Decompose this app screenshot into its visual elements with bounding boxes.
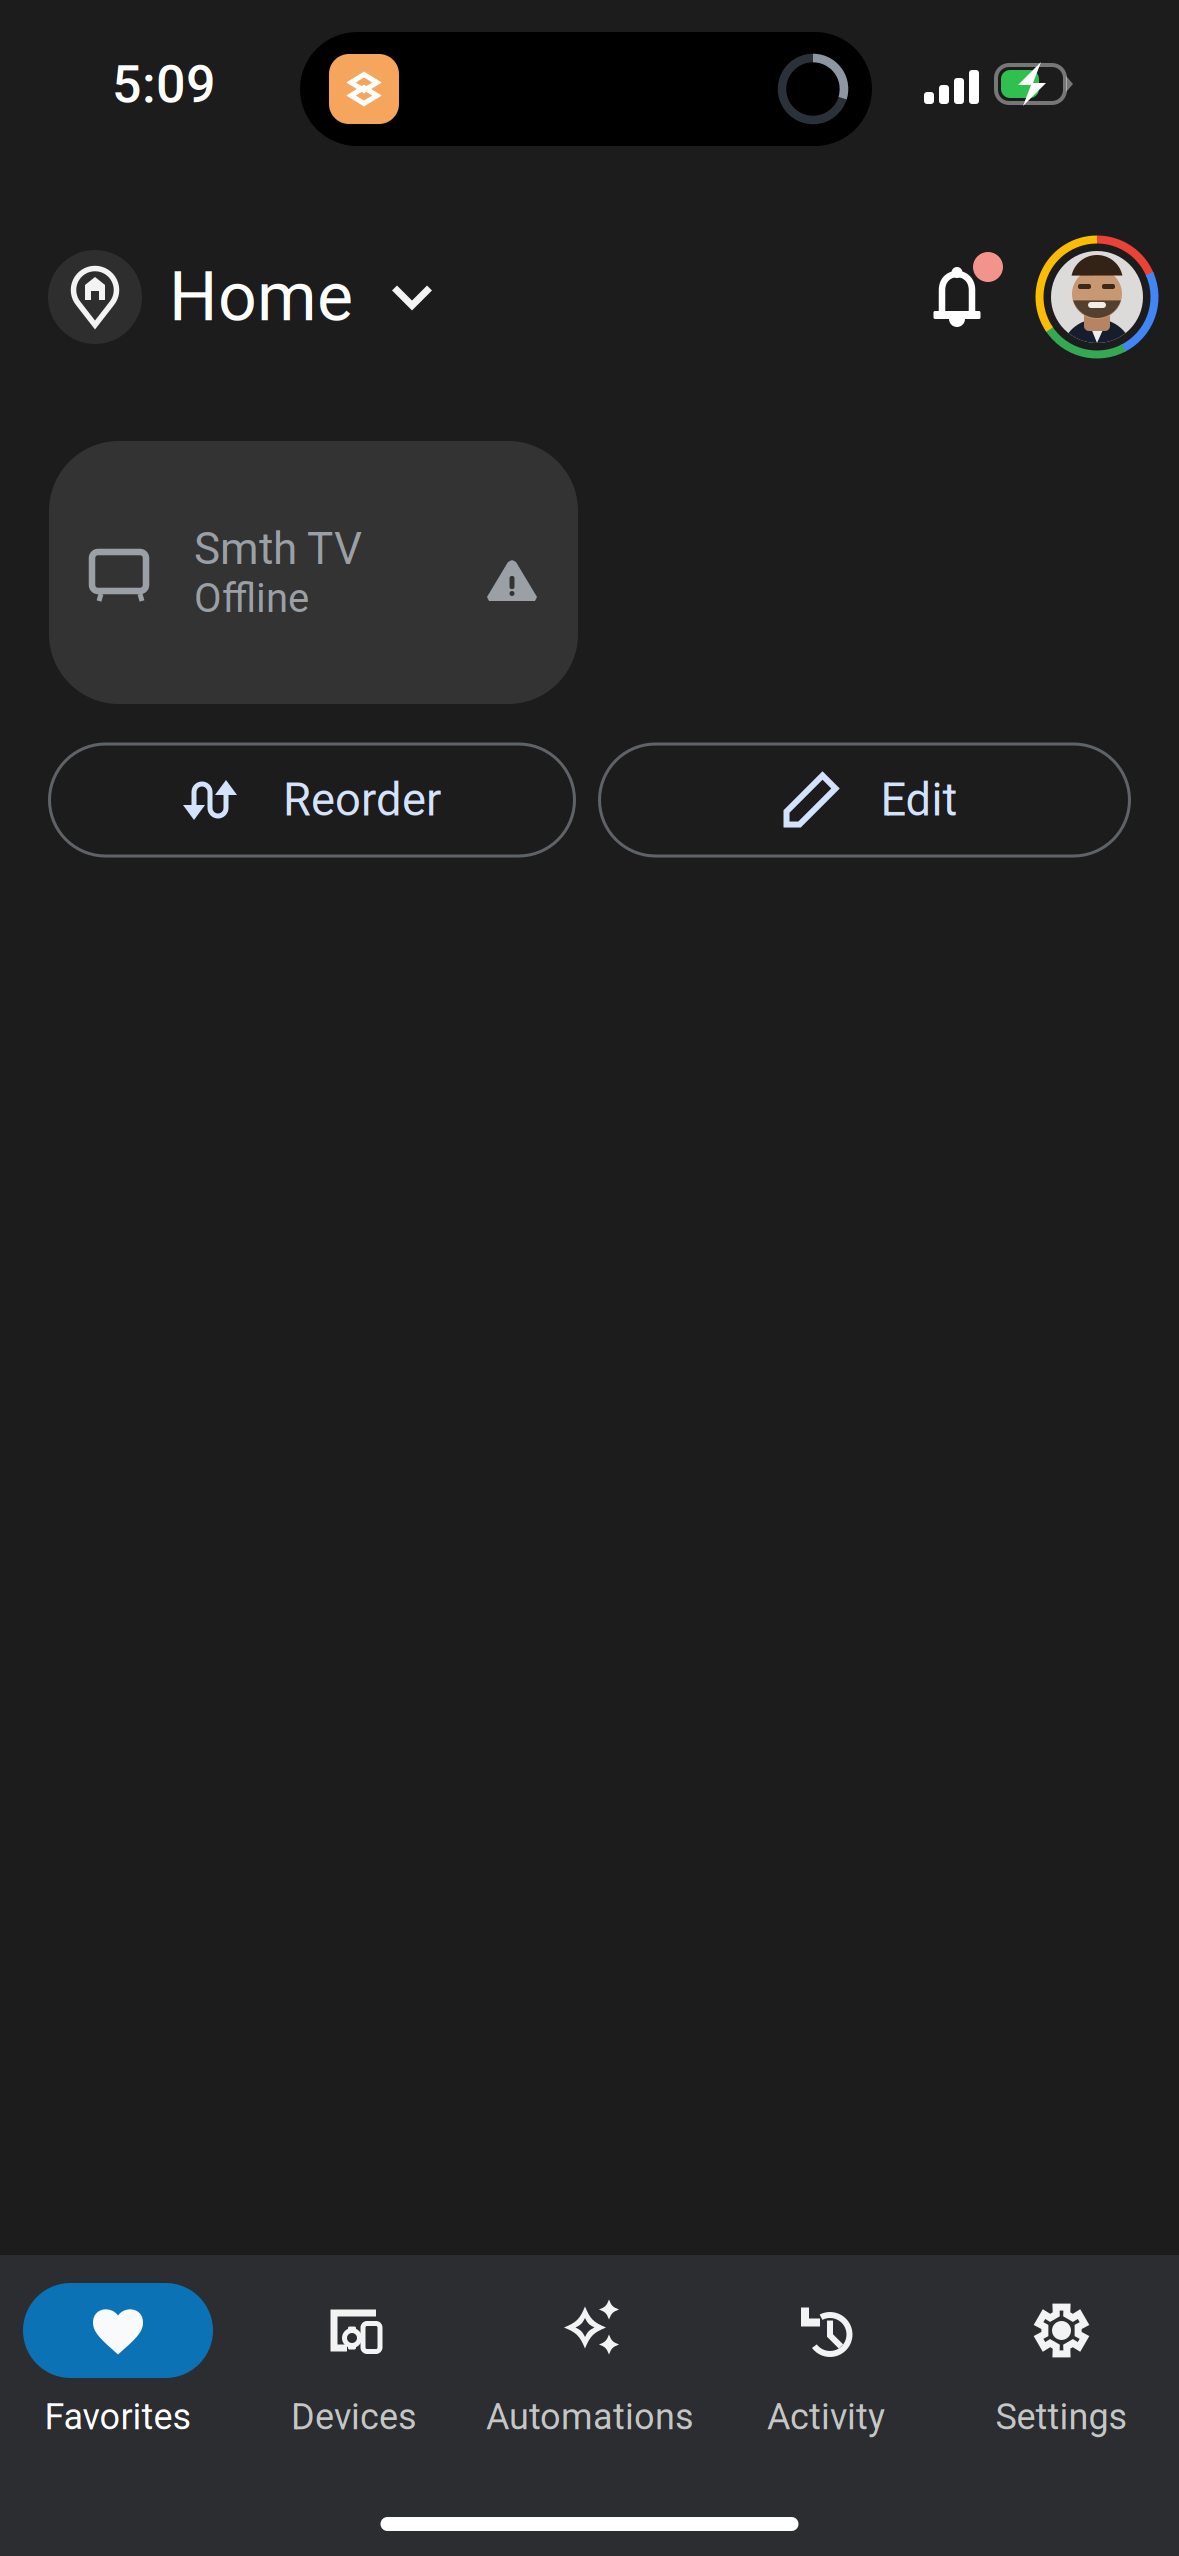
staticText: Edit xyxy=(880,773,957,826)
staticText: 5:09 xyxy=(112,54,216,115)
staticText: Smth TV xyxy=(194,523,362,575)
staticText: Home xyxy=(169,257,353,337)
button[interactable]: Activity xyxy=(708,2283,944,2442)
button[interactable]: Smth TV xyxy=(49,441,578,704)
button[interactable]: Home xyxy=(48,236,433,358)
button[interactable]: Settings xyxy=(944,2283,1179,2442)
button[interactable]: Reorder xyxy=(49,744,574,856)
staticText: Activity xyxy=(767,2396,885,2438)
staticText: Offline xyxy=(194,575,309,622)
staticText: Automations xyxy=(486,2396,694,2438)
button[interactable]: Devices xyxy=(236,2283,472,2442)
button[interactable]: Edit xyxy=(599,744,1129,856)
staticText: Devices xyxy=(291,2396,417,2438)
button[interactable]: Automations xyxy=(472,2283,708,2442)
button[interactable]: Favorites xyxy=(0,2283,236,2442)
staticText: Favorites xyxy=(44,2396,191,2438)
button[interactable]: Notifications xyxy=(931,252,1000,342)
button[interactable]: Account xyxy=(1036,236,1158,358)
staticText: Reorder xyxy=(283,773,441,826)
staticText: Settings xyxy=(995,2396,1127,2438)
